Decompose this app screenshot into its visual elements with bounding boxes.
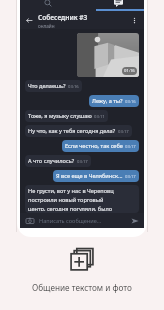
staticText: Общение текстом и фото — [32, 282, 132, 293]
staticText: центр, сегодня погуляли, было — [28, 205, 112, 211]
staticText: 03:17 — [125, 174, 136, 180]
button[interactable]: Что делаешь? — [25, 80, 82, 92]
button[interactable]: Лежу, а ты? — [89, 95, 139, 107]
staticText: 03:16 — [68, 84, 79, 90]
button[interactable]: Тоже, я музыку слушаю — [25, 110, 108, 122]
staticText: Тоже, я музыку слушаю — [28, 112, 92, 120]
button[interactable]: More options — [129, 15, 140, 26]
staticText: Я все еще в Челябинск... — [56, 172, 123, 180]
button[interactable]: Attach photo — [24, 215, 35, 226]
button[interactable]: Если честно, так себе — [62, 140, 139, 152]
button[interactable]: Написать сообщение... — [39, 217, 129, 225]
staticText: Не грусти, вот у нас в Череповц — [28, 187, 114, 195]
button[interactable]: Общение текстом и фото — [67, 245, 97, 275]
staticText: Написать сообщение... — [39, 217, 102, 225]
button[interactable]: Photo — [77, 33, 139, 77]
button[interactable]: Я все еще в Челябинск... — [53, 170, 139, 182]
staticText: А что случилось? — [28, 157, 75, 165]
staticText: 03:17 — [118, 129, 129, 135]
button[interactable]: Back — [20, 12, 144, 29]
staticText: построили новый торговый — [28, 196, 104, 204]
staticText: Ну что, как у тебя сегодня дела? — [28, 127, 116, 135]
button[interactable]: Search — [40, 0, 56, 11]
button[interactable]: Chats — [110, 0, 126, 10]
staticText: 03:17 — [125, 144, 136, 150]
button[interactable]: А что случилось? — [25, 155, 91, 167]
button[interactable]: Не грусти, вот у нас в Череповц — [25, 185, 139, 213]
staticText: Собеседник #3 — [38, 13, 88, 22]
staticText: 03:17 — [77, 159, 88, 165]
staticText: 03:16 — [125, 99, 136, 105]
button[interactable]: Ну что, как у тебя сегодня дела? — [25, 125, 132, 137]
staticText: Если честно, так себе — [65, 142, 123, 150]
staticText: Лежу, а ты? — [92, 97, 123, 105]
staticText: онлайн — [38, 23, 55, 29]
staticText: 03:11 — [94, 114, 105, 120]
button[interactable]: Back — [24, 15, 35, 26]
staticText: Что делаешь? — [28, 82, 66, 90]
staticText: 01:16 — [124, 68, 135, 74]
button[interactable]: Send — [129, 215, 140, 226]
